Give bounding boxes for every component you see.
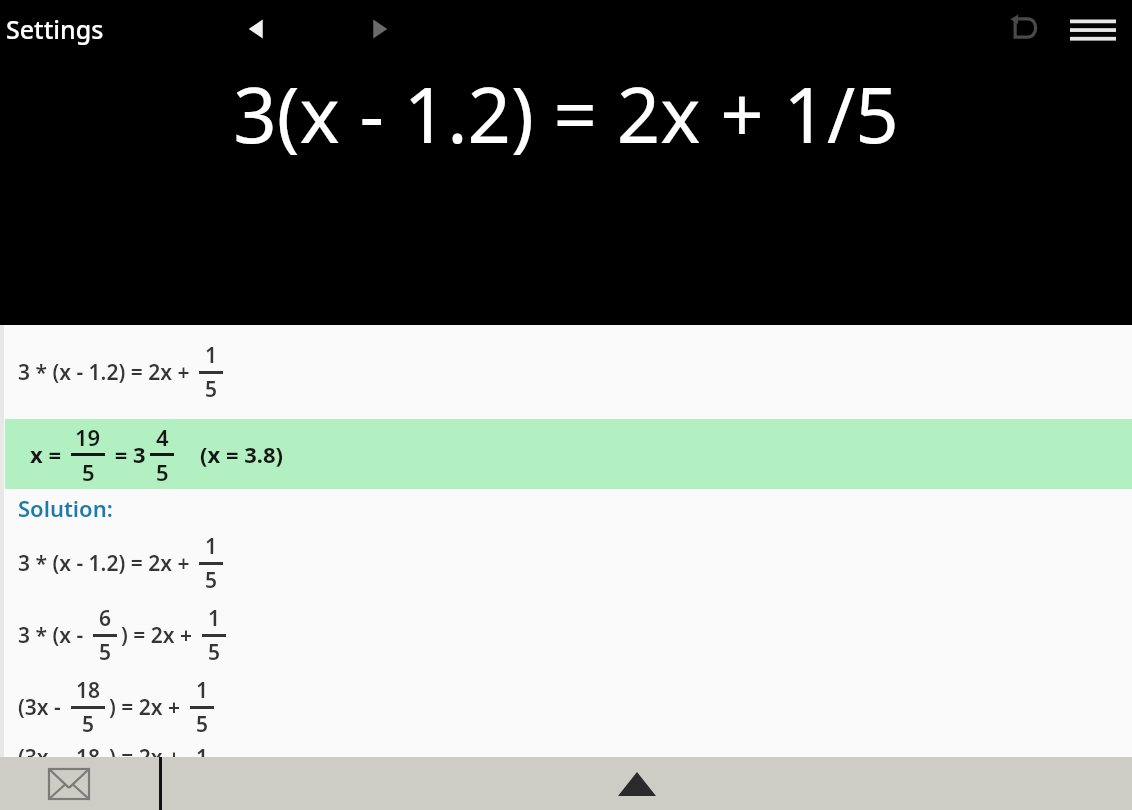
staticText: Solution: bbox=[18, 493, 113, 523]
staticText: 3 * (x - bbox=[18, 621, 89, 650]
staticText: 4 bbox=[156, 422, 169, 452]
staticText: 3 * (x - 1.2) = 2x + bbox=[18, 549, 195, 578]
button[interactable]: x = bbox=[0, 419, 1132, 489]
button[interactable]: Undo bbox=[1002, 6, 1048, 52]
button[interactable]: 3 * (x - 1.2) = 2x + bbox=[0, 325, 1132, 419]
button[interactable]: Mail bbox=[40, 760, 98, 808]
staticText: 5 bbox=[205, 375, 218, 404]
staticText: 1 bbox=[208, 604, 221, 633]
staticText: ) = 2x + bbox=[109, 693, 186, 722]
button[interactable]: 3 * (x - bbox=[0, 599, 1132, 671]
button[interactable]: Solution: bbox=[0, 489, 1132, 527]
staticText: 1 bbox=[196, 676, 209, 705]
staticText: 5 bbox=[82, 457, 95, 487]
staticText: 5 bbox=[99, 638, 112, 667]
staticText: (3x - bbox=[18, 693, 67, 722]
staticText: 5 bbox=[208, 638, 221, 667]
staticText: 18 bbox=[76, 676, 101, 705]
staticText: 5 bbox=[196, 710, 209, 739]
staticText: = 3 bbox=[109, 439, 146, 469]
staticText: 5 bbox=[156, 457, 169, 487]
staticText: 5 bbox=[205, 566, 218, 595]
staticText: 3(x - 1.2) = 2x + 1/5 bbox=[233, 62, 899, 166]
staticText: 18 bbox=[76, 743, 101, 757]
button[interactable]: Next bbox=[358, 6, 400, 52]
staticText: 6 bbox=[99, 604, 112, 633]
staticText: 3 * (x - 1.2) = 2x + bbox=[18, 358, 195, 387]
staticText: (3x - bbox=[18, 743, 67, 757]
button[interactable]: Settings bbox=[0, 8, 114, 50]
staticText: 5 bbox=[82, 710, 95, 739]
staticText: ) = 2x + bbox=[109, 743, 186, 757]
button[interactable]: 3(x - 1.2) = 2x + 1/5 bbox=[0, 62, 1132, 166]
staticText: 1 bbox=[196, 743, 209, 757]
staticText: 1 bbox=[205, 532, 218, 561]
staticText: ) = 2x + bbox=[121, 621, 198, 650]
button[interactable]: 3 * (x - 1.2) = 2x + bbox=[0, 527, 1132, 599]
staticText: x = bbox=[30, 439, 67, 469]
button[interactable]: Expand bbox=[612, 766, 662, 802]
button[interactable]: (3x - bbox=[0, 743, 1132, 757]
button[interactable]: Menu bbox=[1066, 11, 1120, 47]
button[interactable]: Previous bbox=[236, 6, 278, 52]
staticText: 1 bbox=[205, 341, 218, 370]
staticText: 19 bbox=[75, 422, 101, 452]
button[interactable]: (3x - bbox=[0, 671, 1132, 743]
staticText: Settings bbox=[6, 12, 104, 46]
staticText: (x = 3.8) bbox=[200, 439, 284, 469]
